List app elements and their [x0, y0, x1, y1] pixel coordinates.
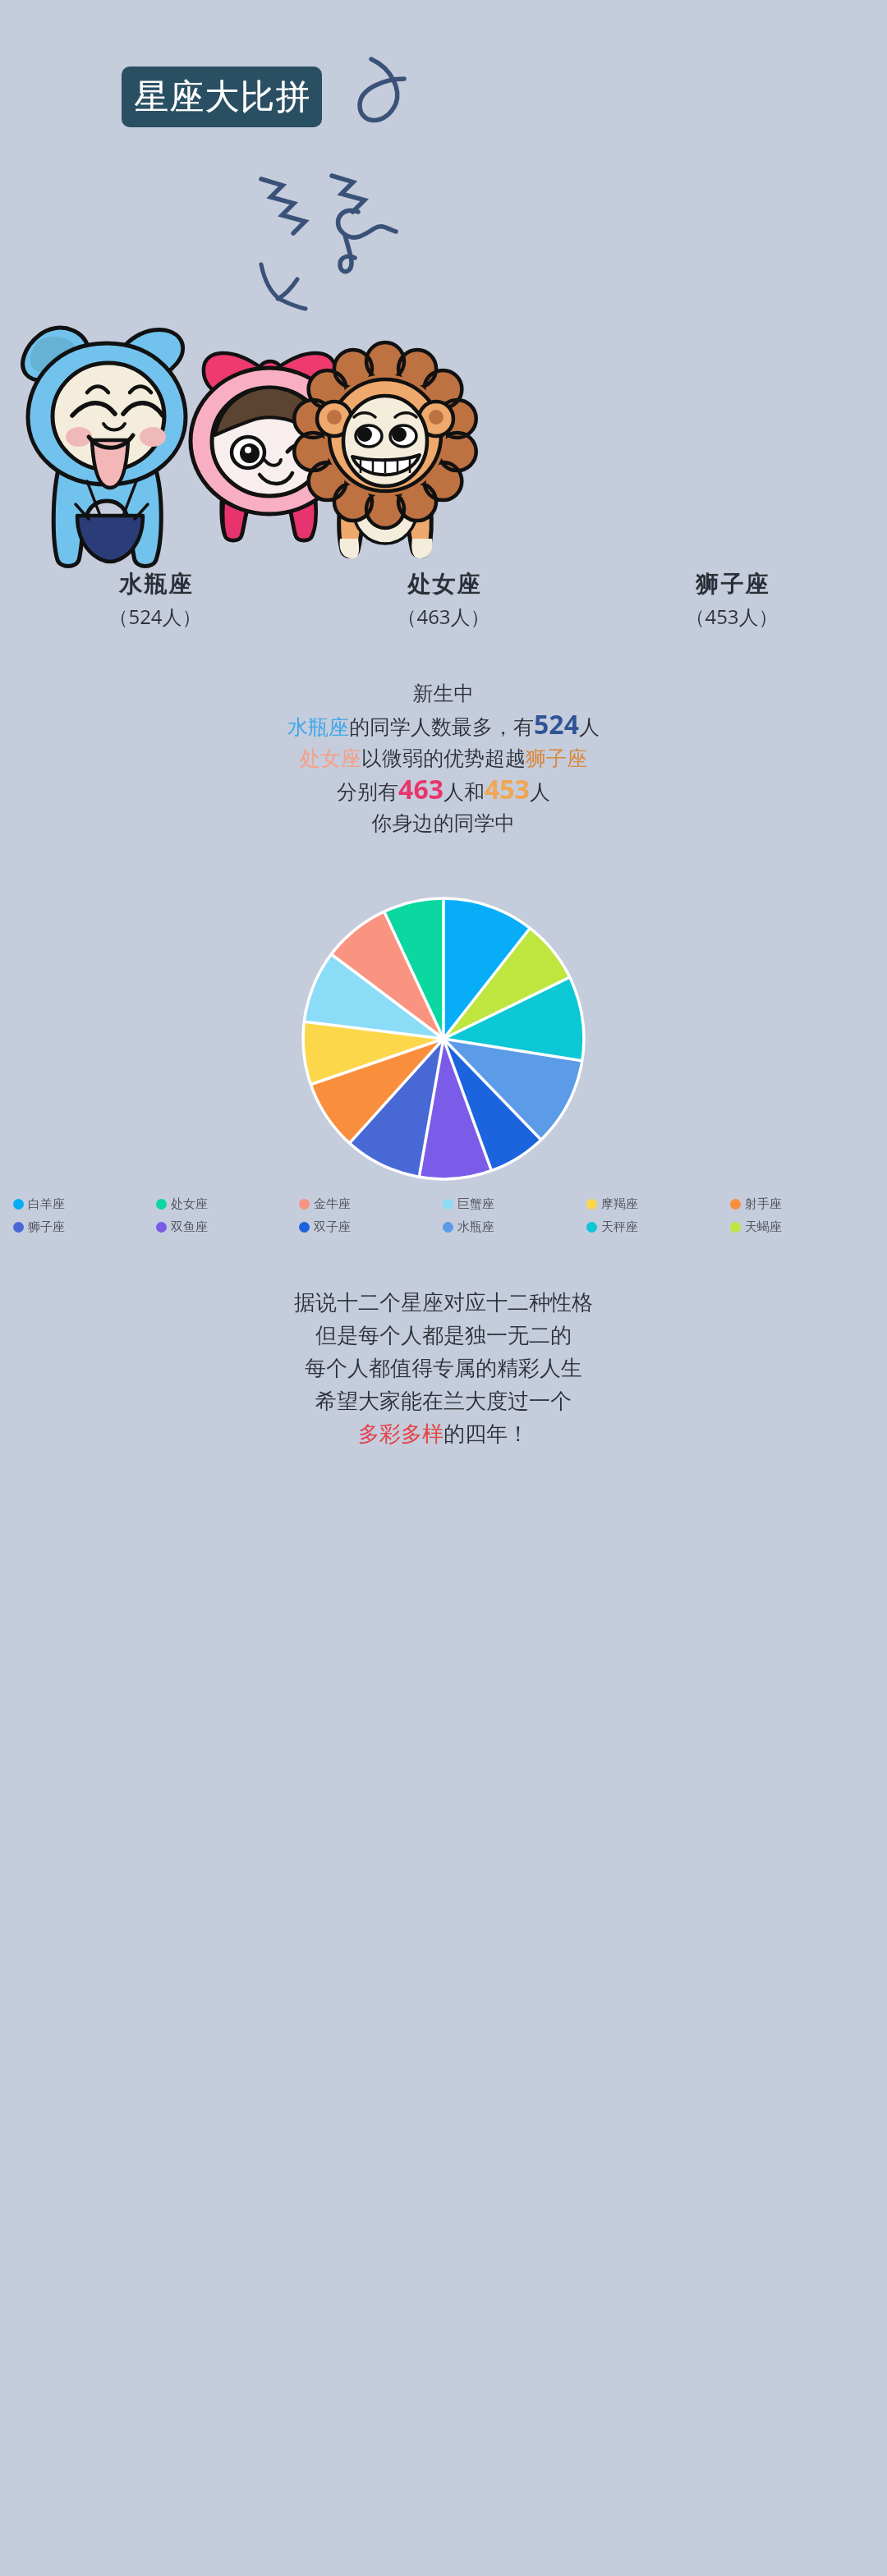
staticText: （524人）	[108, 603, 202, 630]
button[interactable]: 水瓶座	[443, 1219, 586, 1235]
staticText: 处女座	[407, 570, 480, 599]
button[interactable]: 星座大比拼	[122, 67, 322, 127]
staticText: 巨蟹座	[457, 1196, 494, 1212]
staticText: 白羊座	[28, 1196, 65, 1212]
staticText: 双鱼座	[171, 1219, 208, 1235]
button[interactable]: 金牛座	[299, 1196, 443, 1212]
staticText: 水瓶座	[118, 570, 192, 599]
button[interactable]: 射手座	[730, 1196, 874, 1212]
staticText: 处女座	[171, 1196, 208, 1212]
staticText: 天秤座	[601, 1219, 638, 1235]
button[interactable]: 天蝎座	[730, 1219, 874, 1235]
button[interactable]: 双子座	[299, 1219, 443, 1235]
staticText: 水瓶座	[457, 1219, 494, 1235]
staticText: 射手座	[745, 1196, 782, 1212]
button[interactable]: 白羊座	[13, 1196, 156, 1212]
staticText: 天蝎座	[745, 1219, 782, 1235]
staticText: 狮子座	[695, 570, 769, 599]
button[interactable]: 狮子座	[13, 1219, 156, 1235]
staticText: 摩羯座	[601, 1196, 638, 1212]
button[interactable]: 天秤座	[586, 1219, 730, 1235]
button[interactable]: 处女座	[156, 1196, 299, 1212]
button[interactable]: 双鱼座	[156, 1219, 299, 1235]
staticText: （453人）	[685, 603, 779, 630]
staticText: 金牛座	[314, 1196, 351, 1212]
button[interactable]: 摩羯座	[586, 1196, 730, 1212]
staticText: 新生中 水瓶座的同学人数最多，有524人 处女座以微弱的优势超越狮子座 分别有4…	[0, 681, 887, 837]
staticText: 双子座	[314, 1219, 351, 1235]
staticText: 星座大比拼	[134, 76, 310, 119]
button[interactable]: 巨蟹座	[443, 1196, 586, 1212]
staticText: （463人）	[397, 603, 490, 630]
staticText: 狮子座	[28, 1219, 65, 1235]
staticText: 据说十二个星座对应十二种性格 但是每个人都是独一无二的 每个人都值得专属的精彩人…	[0, 1289, 887, 1448]
